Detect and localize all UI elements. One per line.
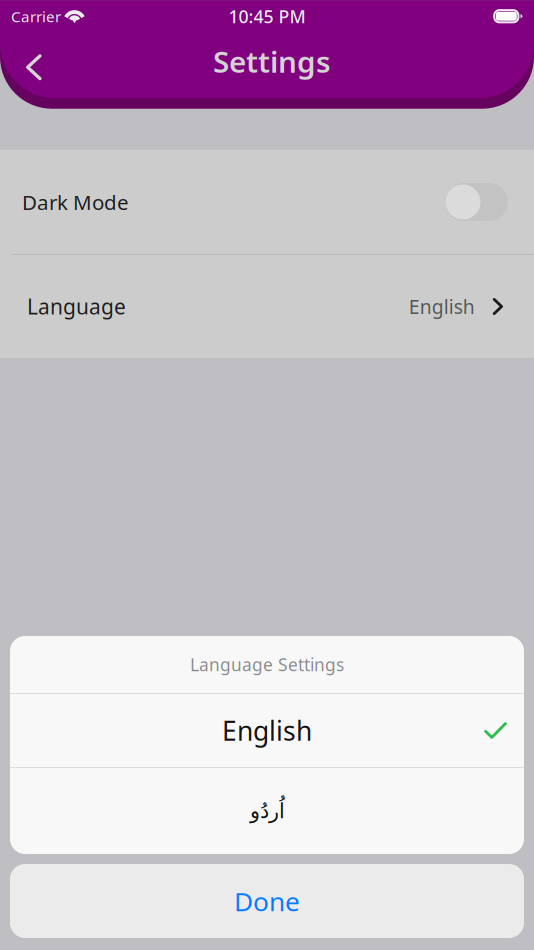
staticText: Language Settings: [190, 653, 344, 676]
button[interactable]: Language: [0, 255, 534, 358]
staticText: English: [222, 713, 312, 748]
staticText: Done: [234, 883, 300, 919]
staticText: اُردُو: [249, 799, 284, 823]
staticText: Settings: [213, 41, 331, 81]
button[interactable]: Done: [10, 864, 524, 938]
button[interactable]: Back: [0, 32, 78, 90]
staticText: Language: [27, 292, 126, 320]
staticText: English: [409, 294, 475, 319]
button[interactable]: Dark Mode: [0, 150, 534, 254]
staticText: Dark Mode: [22, 188, 129, 216]
staticText: 10:45 PM: [228, 4, 305, 28]
button[interactable]: اُردُو: [10, 768, 524, 854]
button[interactable]: English: [10, 694, 524, 767]
staticText: Carrier: [11, 6, 61, 26]
